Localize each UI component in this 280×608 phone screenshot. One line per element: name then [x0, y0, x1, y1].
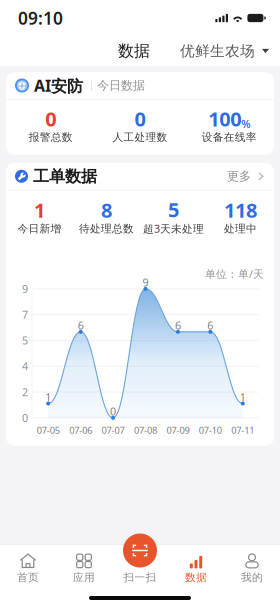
button[interactable]: 我的 — [224, 545, 280, 592]
staticText: 9 — [22, 282, 28, 296]
button[interactable]: 首页 — [0, 545, 56, 592]
staticText: 9 — [142, 275, 148, 289]
button[interactable]: 应用 — [56, 545, 112, 592]
staticText: 人工处理数 — [112, 131, 167, 144]
staticText: 扫一扫 — [123, 571, 156, 584]
button[interactable]: 优鲜生农场 — [180, 38, 269, 64]
staticText: 5 — [168, 196, 179, 223]
staticText: 处理中 — [224, 222, 257, 235]
staticText: 待处理总数 — [79, 222, 134, 235]
staticText: 118 — [224, 197, 257, 223]
staticText: 07-08 — [134, 424, 157, 436]
staticText: 8 — [101, 197, 112, 223]
staticText: 07-10 — [199, 424, 222, 436]
staticText: 07-09 — [166, 424, 189, 436]
staticText: 0 — [134, 105, 145, 132]
staticText: 今日新增 — [17, 222, 61, 235]
button[interactable]: 扫一扫 — [112, 545, 168, 592]
staticText: 6 — [175, 318, 181, 332]
staticText: 6 — [78, 318, 84, 332]
staticText: 优鲜生农场 — [180, 42, 255, 60]
staticText: 报警总数 — [29, 131, 73, 144]
staticText: 07-06 — [69, 424, 92, 436]
staticText: 100 — [208, 105, 241, 132]
staticText: 今日数据 — [97, 78, 145, 93]
staticText: 2 — [22, 385, 28, 399]
staticText: AI安防 — [34, 75, 83, 96]
staticText: 1 — [34, 197, 45, 223]
staticText: 07-07 — [102, 424, 125, 436]
staticText: 更多 — [227, 169, 251, 184]
staticText: 07-05 — [37, 424, 60, 436]
staticText: 6 — [207, 318, 213, 332]
button[interactable]: 数据 — [112, 37, 156, 65]
staticText: 0 — [22, 411, 28, 425]
staticText: % — [241, 117, 250, 131]
staticText: 09:10 — [18, 6, 63, 29]
staticText: 数据 — [118, 41, 150, 61]
staticText: 超3天未处理 — [143, 221, 204, 236]
staticText: 0 — [45, 105, 56, 132]
staticText: 工单数据 — [33, 166, 97, 186]
staticText: 7 — [22, 308, 28, 322]
button[interactable]: 数据 — [168, 545, 224, 592]
staticText: 1 — [45, 390, 51, 404]
staticText: 单位：单/天 — [205, 267, 264, 281]
staticText: 设备在线率 — [202, 131, 257, 144]
button[interactable]: 更多 — [227, 164, 265, 189]
staticText: 07-11 — [231, 424, 254, 436]
button[interactable]: 扫一扫 — [123, 533, 157, 567]
staticText: 应用 — [73, 571, 95, 584]
staticText: 5 — [22, 333, 28, 348]
staticText: 我的 — [241, 571, 263, 584]
staticText: 数据 — [185, 571, 207, 584]
staticText: 1 — [240, 390, 246, 404]
staticText: 4 — [22, 359, 28, 373]
staticText: 0 — [110, 404, 116, 418]
staticText: 首页 — [17, 571, 39, 584]
